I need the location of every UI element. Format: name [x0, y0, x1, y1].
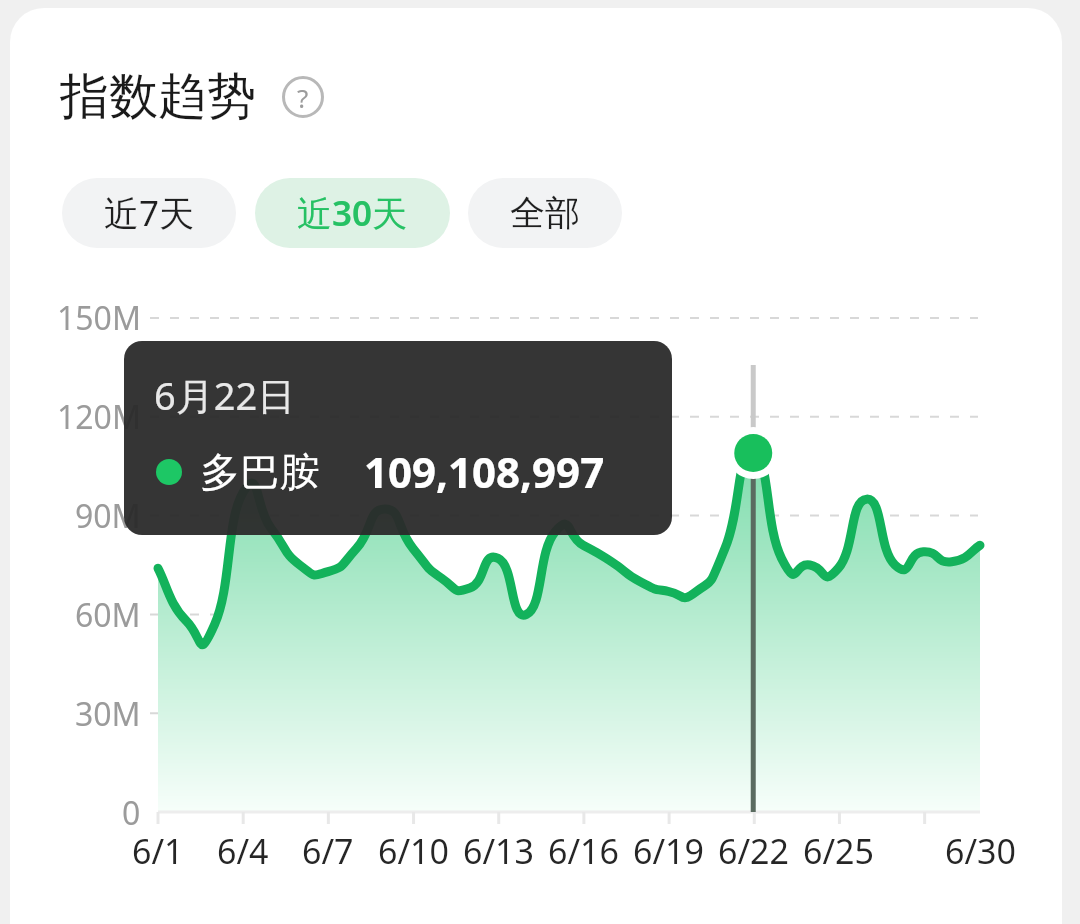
- button[interactable]: 全部: [468, 178, 622, 248]
- staticText: 150M: [57, 296, 141, 340]
- staticText: 6/10: [378, 828, 449, 874]
- staticText: 6/1: [132, 828, 184, 874]
- other: 帮助: [282, 76, 324, 118]
- staticText: 120M: [57, 395, 141, 439]
- staticText: ?: [297, 80, 309, 115]
- staticText: 多巴胺: [200, 447, 320, 497]
- staticText: 6/30: [945, 828, 1016, 874]
- staticText: 0: [122, 791, 141, 835]
- button[interactable]: 近7天: [62, 178, 236, 248]
- button[interactable]: 指数趋势: [60, 66, 324, 128]
- button[interactable]: 近30天: [255, 178, 450, 248]
- staticText: 30M: [75, 692, 141, 736]
- staticText: 6/13: [463, 828, 534, 874]
- staticText: 6/16: [548, 828, 619, 874]
- staticText: 60M: [75, 593, 141, 637]
- staticText: 6/25: [803, 828, 874, 874]
- staticText: 6月22日: [154, 369, 296, 421]
- staticText: 近7天: [104, 189, 195, 237]
- staticText: 6/19: [633, 828, 704, 874]
- staticText: 指数趋势: [60, 66, 256, 128]
- staticText: 6/7: [302, 828, 354, 874]
- staticText: 6/22: [718, 828, 789, 874]
- staticText: 6/4: [217, 828, 269, 874]
- staticText: 全部: [510, 191, 580, 235]
- staticText: 90M: [75, 494, 141, 538]
- staticText: 近30天: [297, 189, 408, 237]
- staticText: 109,108,997: [364, 443, 605, 500]
